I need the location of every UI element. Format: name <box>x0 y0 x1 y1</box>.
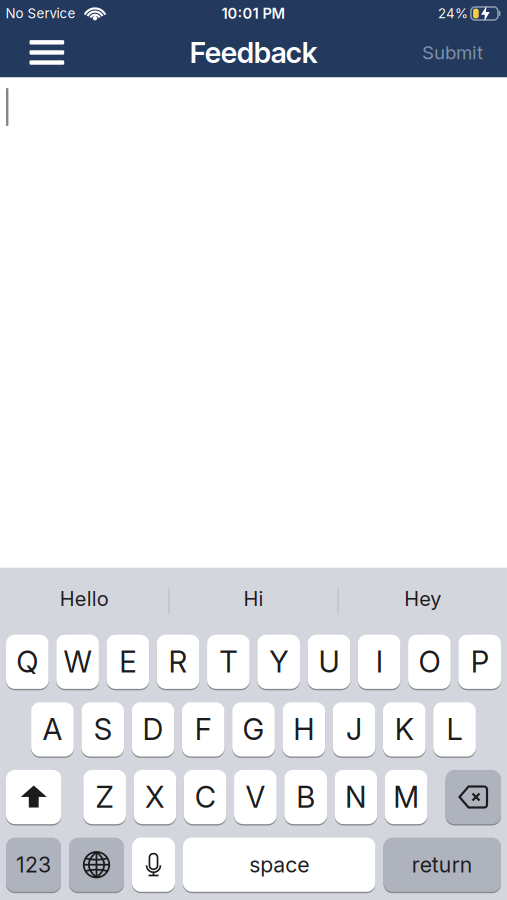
button[interactable]: 123 <box>6 838 61 892</box>
button[interactable]: Hello <box>0 568 168 635</box>
button[interactable]: Menu <box>0 40 64 65</box>
staticText: C <box>195 780 216 814</box>
staticText: Y <box>269 644 288 679</box>
button[interactable]: L <box>433 702 476 756</box>
staticText: Hello <box>60 587 109 611</box>
staticText: space <box>249 852 309 877</box>
button[interactable]: D <box>132 702 174 756</box>
button[interactable]: Hey <box>339 568 507 635</box>
staticText: 123 <box>16 852 51 877</box>
button[interactable]: J <box>333 702 375 756</box>
staticText: P <box>471 644 489 679</box>
button[interactable]: S <box>81 702 124 756</box>
staticText: F <box>195 712 212 747</box>
staticText: E <box>119 644 136 679</box>
staticText: I <box>376 644 383 679</box>
button[interactable]: Next keyboard <box>69 838 124 892</box>
staticText: Submit <box>422 41 483 63</box>
staticText: X <box>145 780 165 814</box>
button[interactable]: O <box>408 635 451 689</box>
staticText: 24% <box>438 6 468 21</box>
staticText: S <box>94 712 112 747</box>
button[interactable]: T <box>207 635 250 689</box>
button[interactable]: F <box>182 702 225 756</box>
button[interactable]: W <box>56 635 99 689</box>
button[interactable]: space <box>183 838 375 892</box>
staticText: G <box>242 712 264 747</box>
button[interactable]: G <box>232 702 275 756</box>
button[interactable]: V <box>234 770 277 824</box>
staticText: R <box>169 644 188 679</box>
staticText: Hi <box>243 587 263 611</box>
button[interactable]: Shift <box>6 770 61 824</box>
button[interactable]: Y <box>257 635 300 689</box>
staticText: A <box>42 712 62 747</box>
button[interactable]: P <box>458 635 501 689</box>
staticText: V <box>245 780 265 814</box>
button[interactable]: R <box>157 635 199 689</box>
button[interactable]: E <box>106 635 149 689</box>
staticText: Q <box>16 644 38 679</box>
button[interactable]: A <box>31 702 74 756</box>
staticText: W <box>64 644 92 679</box>
button[interactable]: Q <box>6 635 49 689</box>
staticText: D <box>142 712 163 747</box>
staticText: B <box>296 780 315 814</box>
staticText: J <box>346 712 362 747</box>
staticText: H <box>293 712 314 747</box>
button[interactable]: M <box>385 770 427 824</box>
button[interactable]: return <box>383 838 501 892</box>
button[interactable]: X <box>133 770 176 824</box>
button[interactable]: Submit <box>422 41 507 63</box>
button[interactable]: U <box>308 635 350 689</box>
button[interactable]: Hi <box>169 568 338 635</box>
button[interactable]: N <box>335 770 377 824</box>
staticText: O <box>418 644 440 679</box>
staticText: M <box>393 780 419 814</box>
staticText: Feedback <box>190 35 317 70</box>
staticText: Hey <box>404 587 441 611</box>
button[interactable]: I <box>358 635 400 689</box>
staticText: Z <box>96 780 114 814</box>
staticText: No Service <box>5 6 75 21</box>
staticText: L <box>446 712 462 747</box>
staticText: T <box>219 644 237 679</box>
staticText: N <box>345 780 367 814</box>
button[interactable]: Delete <box>445 770 501 824</box>
staticText: U <box>318 644 339 679</box>
button[interactable]: K <box>383 702 426 756</box>
button[interactable]: H <box>282 702 325 756</box>
staticText: return <box>412 852 473 877</box>
button[interactable]: Dictate <box>132 838 175 892</box>
button[interactable]: C <box>184 770 226 824</box>
button[interactable]: Z <box>83 770 126 824</box>
staticText: 10:01 PM <box>221 5 285 22</box>
button[interactable]: B <box>284 770 327 824</box>
staticText: K <box>395 712 414 747</box>
